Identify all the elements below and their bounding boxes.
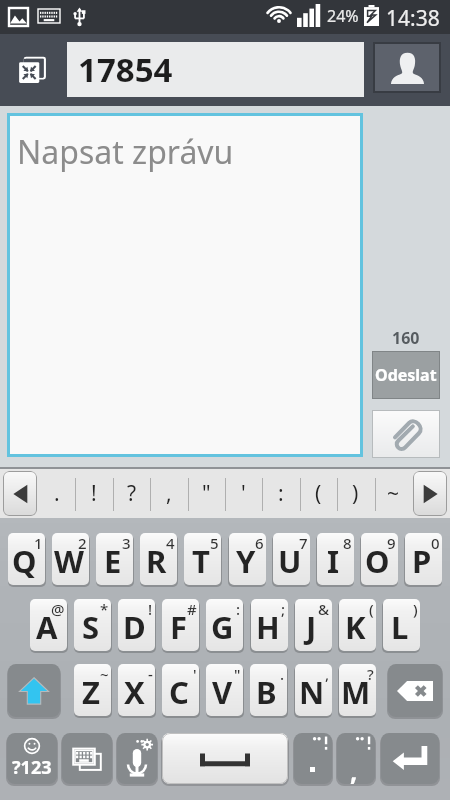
staticText: #: [187, 599, 197, 619]
button[interactable]: D: [118, 599, 155, 651]
button[interactable]: Voice input: [117, 733, 157, 784]
button[interactable]: U: [273, 533, 310, 585]
staticText: .: [54, 479, 60, 508]
staticText: :: [236, 599, 241, 619]
button[interactable]: B: [250, 664, 287, 716]
staticText: 4: [166, 533, 175, 553]
staticText: K: [345, 606, 366, 648]
button[interactable]: E: [96, 533, 133, 585]
button[interactable]: P: [405, 533, 442, 585]
staticText: 9: [387, 533, 396, 553]
staticText: :: [278, 479, 284, 508]
staticText: U: [278, 540, 302, 582]
staticText: V: [212, 671, 233, 713]
button[interactable]: ,: [150, 469, 187, 518]
button[interactable]: O: [361, 533, 398, 585]
button[interactable]: X: [118, 664, 155, 716]
button[interactable]: 17854: [67, 42, 364, 97]
staticText: -: [148, 664, 153, 684]
button[interactable]: Contacts: [373, 42, 441, 93]
button[interactable]: :: [262, 469, 299, 518]
staticText: L: [391, 606, 409, 648]
button[interactable]: R: [140, 533, 177, 585]
button[interactable]: ): [337, 469, 374, 518]
staticText: B: [256, 671, 277, 713]
staticText: S: [82, 606, 100, 648]
staticText: W: [54, 540, 84, 582]
staticText: 17854: [78, 47, 173, 92]
button[interactable]: W: [52, 533, 89, 585]
staticText: Q: [12, 540, 37, 582]
button[interactable]: ~: [375, 469, 412, 518]
button[interactable]: Symbols: [7, 733, 57, 784]
staticText: N: [299, 671, 325, 713]
button[interactable]: A: [30, 599, 67, 651]
button[interactable]: !: [75, 469, 112, 518]
staticText: Napsat zprávu: [17, 130, 234, 174]
staticText: ?: [367, 664, 374, 684]
staticText: ': [193, 664, 197, 684]
button[interactable]: Shift: [8, 664, 60, 717]
staticText: *: [100, 599, 109, 619]
button[interactable]: Space: [162, 733, 288, 784]
staticText: T: [192, 540, 210, 582]
button[interactable]: Q: [8, 533, 45, 585]
staticText: Y: [236, 540, 256, 582]
button[interactable]: .: [38, 469, 75, 518]
staticText: ,: [350, 753, 358, 784]
button[interactable]: F: [162, 599, 199, 651]
button[interactable]: Switch keyboard: [62, 733, 112, 784]
button[interactable]: Previous suggestions: [3, 471, 37, 516]
button[interactable]: Z: [74, 664, 111, 716]
button[interactable]: ,: [337, 733, 375, 784]
staticText: M: [341, 671, 371, 713]
staticText: 3: [122, 533, 131, 553]
staticText: ~: [100, 664, 109, 684]
staticText: !: [91, 479, 97, 508]
button[interactable]: ': [225, 469, 262, 518]
button[interactable]: Y: [229, 533, 266, 585]
button[interactable]: C: [162, 664, 199, 716]
button[interactable]: G: [206, 599, 243, 651]
staticText: ': [241, 479, 246, 508]
staticText: !: [148, 599, 153, 619]
button[interactable]: ": [188, 469, 225, 518]
staticText: ": [234, 664, 241, 684]
staticText: 2: [78, 533, 87, 553]
staticText: C: [169, 671, 189, 713]
staticText: ;: [281, 599, 286, 619]
staticText: (: [315, 479, 322, 508]
staticText: ": [202, 479, 211, 508]
button[interactable]: (: [300, 469, 337, 518]
button[interactable]: Backspace: [388, 664, 442, 717]
button[interactable]: Collapse: [2, 34, 62, 106]
button[interactable]: S: [74, 599, 111, 651]
button[interactable]: More suggestions: [413, 471, 447, 516]
staticText: R: [146, 540, 167, 582]
button[interactable]: Napsat zprávu: [7, 113, 363, 457]
staticText: D: [123, 606, 146, 648]
button[interactable]: ?: [113, 469, 150, 518]
button[interactable]: Enter: [381, 733, 439, 784]
staticText: 5: [210, 533, 219, 553]
staticText: ): [352, 479, 359, 508]
button[interactable]: L: [383, 599, 420, 651]
button[interactable]: N: [295, 664, 332, 716]
staticText: 1: [34, 533, 43, 553]
staticText: 160: [392, 327, 420, 349]
staticText: ,: [166, 479, 172, 508]
staticText: ~: [387, 479, 400, 508]
button[interactable]: I: [317, 533, 354, 585]
button[interactable]: [294, 733, 332, 784]
button[interactable]: T: [184, 533, 221, 585]
button[interactable]: M: [339, 664, 376, 716]
button[interactable]: Odeslat: [372, 351, 440, 399]
button[interactable]: J: [295, 599, 332, 651]
staticText: O: [365, 540, 390, 582]
staticText: 14:38: [386, 4, 440, 33]
button[interactable]: Attach: [372, 410, 440, 458]
button[interactable]: V: [206, 664, 243, 716]
button[interactable]: K: [339, 599, 376, 651]
staticText: 7: [299, 533, 308, 553]
button[interactable]: H: [251, 599, 288, 651]
